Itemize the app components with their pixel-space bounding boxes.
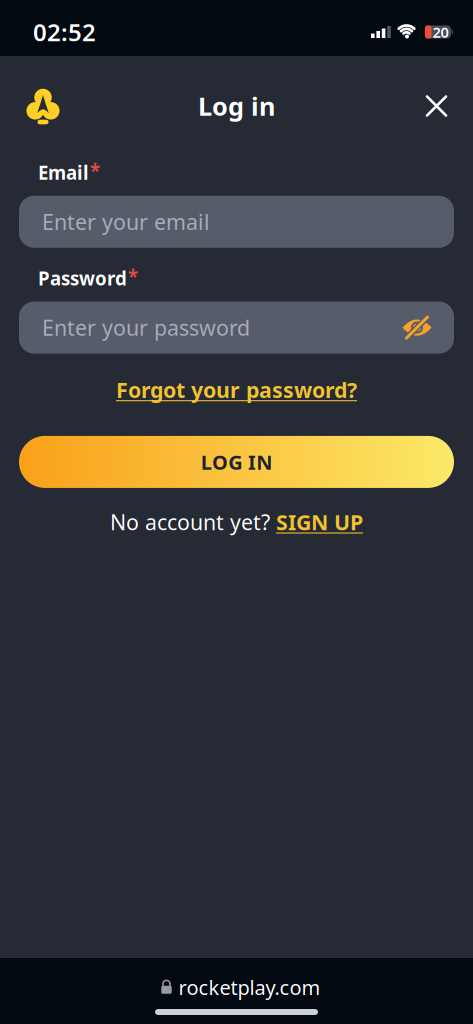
button[interactable]: LOG IN xyxy=(0,436,473,488)
button[interactable]: RocketPlay home xyxy=(0,86,61,126)
button[interactable]: SIGN UP xyxy=(276,508,363,536)
staticText: rocketplay.com xyxy=(178,974,320,1001)
staticText: Password xyxy=(38,266,127,291)
staticText: 02:52 xyxy=(33,16,96,48)
staticText: 20 xyxy=(432,22,448,42)
staticText: Forgot your password? xyxy=(116,376,357,404)
staticText: No account yet? xyxy=(110,508,276,536)
button[interactable]: Address bar: rocketplay.com xyxy=(160,974,320,1001)
button[interactable]: Show password xyxy=(402,316,454,340)
staticText: LOG IN xyxy=(201,449,272,475)
staticText: Enter your password xyxy=(42,313,250,342)
staticText: Email xyxy=(38,160,89,185)
button[interactable]: Close xyxy=(427,96,473,115)
staticText: * xyxy=(90,158,100,183)
button[interactable]: Forgot your password? xyxy=(116,376,357,404)
staticText: SIGN UP xyxy=(276,508,363,536)
staticText: * xyxy=(128,264,138,289)
staticText: Enter your email xyxy=(42,208,210,236)
staticText: Log in xyxy=(198,89,275,123)
